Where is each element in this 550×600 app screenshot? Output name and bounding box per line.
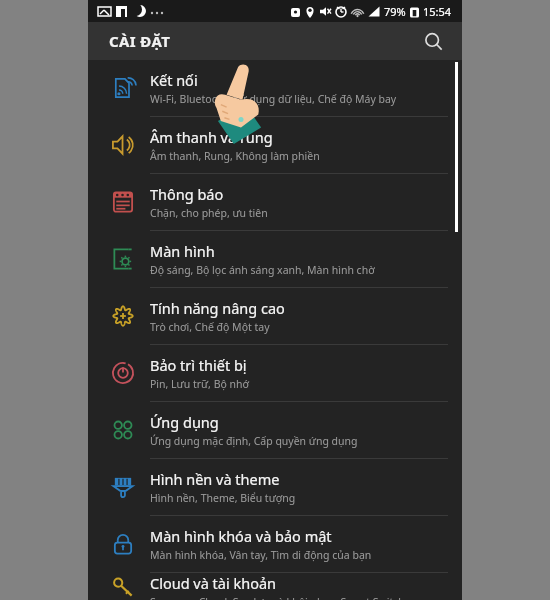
staticText: Kết nối (150, 70, 198, 90)
staticText: Trò chơi, Chế độ Một tay (150, 320, 270, 334)
staticText: Màn hình (150, 241, 215, 261)
button[interactable]: Kết nối (88, 60, 462, 116)
button[interactable]: Tính năng nâng cao (88, 288, 462, 344)
button[interactable]: Search (416, 24, 450, 58)
staticText: Samsung Cloud, Sao lưu và khôi phục, Sma… (150, 595, 405, 600)
button[interactable]: Bảo trì thiết bị (88, 345, 462, 401)
staticText: Thông báo (150, 184, 224, 204)
staticText: Màn hình khóa và bảo mật (150, 526, 332, 546)
staticText: Wi-Fi, Bluetooth, Sử dụng dữ liệu, Chế đ… (150, 92, 397, 106)
staticText: 79% (384, 4, 406, 19)
staticText: Pin, Lưu trữ, Bộ nhớ (150, 377, 249, 391)
staticText: Độ sáng, Bộ lọc ánh sáng xanh, Màn hình … (150, 263, 375, 277)
button[interactable]: Cloud và tài khoản (88, 573, 462, 600)
button[interactable]: Thông báo (88, 174, 462, 230)
staticText: Âm thanh và rung (150, 127, 273, 147)
staticText: Ứng dụng (150, 412, 219, 432)
staticText: 15:54 (423, 4, 452, 19)
staticText: Ứng dụng mặc định, Cấp quyền ứng dụng (150, 434, 358, 448)
staticText: Hình nền và theme (150, 469, 280, 489)
staticText: Tính năng nâng cao (150, 298, 285, 318)
button[interactable]: Màn hình (88, 231, 462, 287)
button[interactable]: Màn hình khóa và bảo mật (88, 516, 462, 572)
staticText: Màn hình khóa, Vân tay, Tìm di động của … (150, 548, 372, 562)
staticText: Cloud và tài khoản (150, 573, 277, 593)
button[interactable]: Âm thanh và rung (88, 117, 462, 173)
staticText: CÀI ĐẶT (109, 31, 171, 51)
staticText: Bảo trì thiết bị (150, 355, 247, 375)
button[interactable]: Ứng dụng (88, 402, 462, 458)
staticText: Âm thanh, Rung, Không làm phiền (150, 149, 320, 163)
staticText: Hình nền, Theme, Biểu tượng (150, 491, 296, 505)
staticText: Chặn, cho phép, ưu tiên (150, 206, 268, 220)
button[interactable]: Hình nền và theme (88, 459, 462, 515)
